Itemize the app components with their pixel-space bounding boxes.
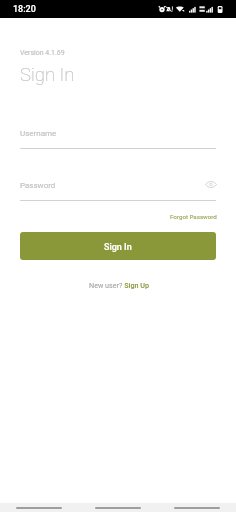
staticText: 18:20 [13,4,36,15]
staticText: Forgot Password [170,213,217,220]
button[interactable]: New user? Sign Up [79,278,159,292]
button[interactable]: Back [0,503,78,512]
button[interactable]: Username [20,126,216,149]
button[interactable]: Password [20,178,216,201]
button[interactable]: Sign In [20,232,216,260]
staticText: Sign In [104,242,132,253]
staticText: Version 4.1.69 [20,49,65,57]
staticText: New user? Sign Up [89,281,149,289]
button[interactable]: Recent apps [157,503,236,512]
button[interactable]: Forgot Password [167,210,217,222]
button[interactable]: Show password [202,176,219,193]
button[interactable]: Home [78,503,157,512]
staticText: Password [20,181,56,190]
staticText: Sign In [20,64,75,86]
staticText: Username [20,129,57,138]
